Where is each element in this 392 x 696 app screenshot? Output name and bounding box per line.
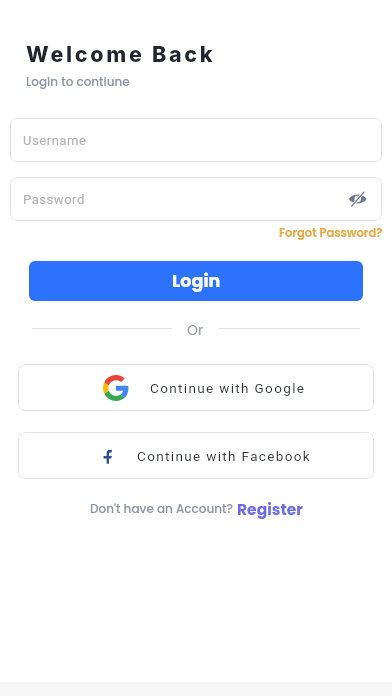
button[interactable]: Continue with Google	[18, 364, 374, 411]
staticText: Continue with Facebook	[137, 448, 312, 464]
staticText: Continue with Google	[150, 380, 306, 396]
button[interactable]: Username	[10, 118, 382, 162]
staticText: Login	[172, 269, 221, 294]
staticText: Welcome Back	[26, 41, 216, 67]
button[interactable]: Continue with Facebook	[18, 432, 374, 479]
staticText: Username	[23, 133, 87, 148]
staticText: Password	[23, 192, 85, 207]
staticText: Don't have an Account?	[90, 500, 237, 517]
button[interactable]: Login	[29, 261, 363, 301]
button[interactable]: Register	[237, 499, 303, 521]
button[interactable]: Forgot Password?	[279, 225, 383, 241]
button[interactable]: Show password	[347, 187, 371, 211]
staticText: Login to contiune	[26, 73, 130, 90]
button[interactable]: Password	[10, 177, 382, 221]
staticText: Or	[187, 320, 204, 336]
